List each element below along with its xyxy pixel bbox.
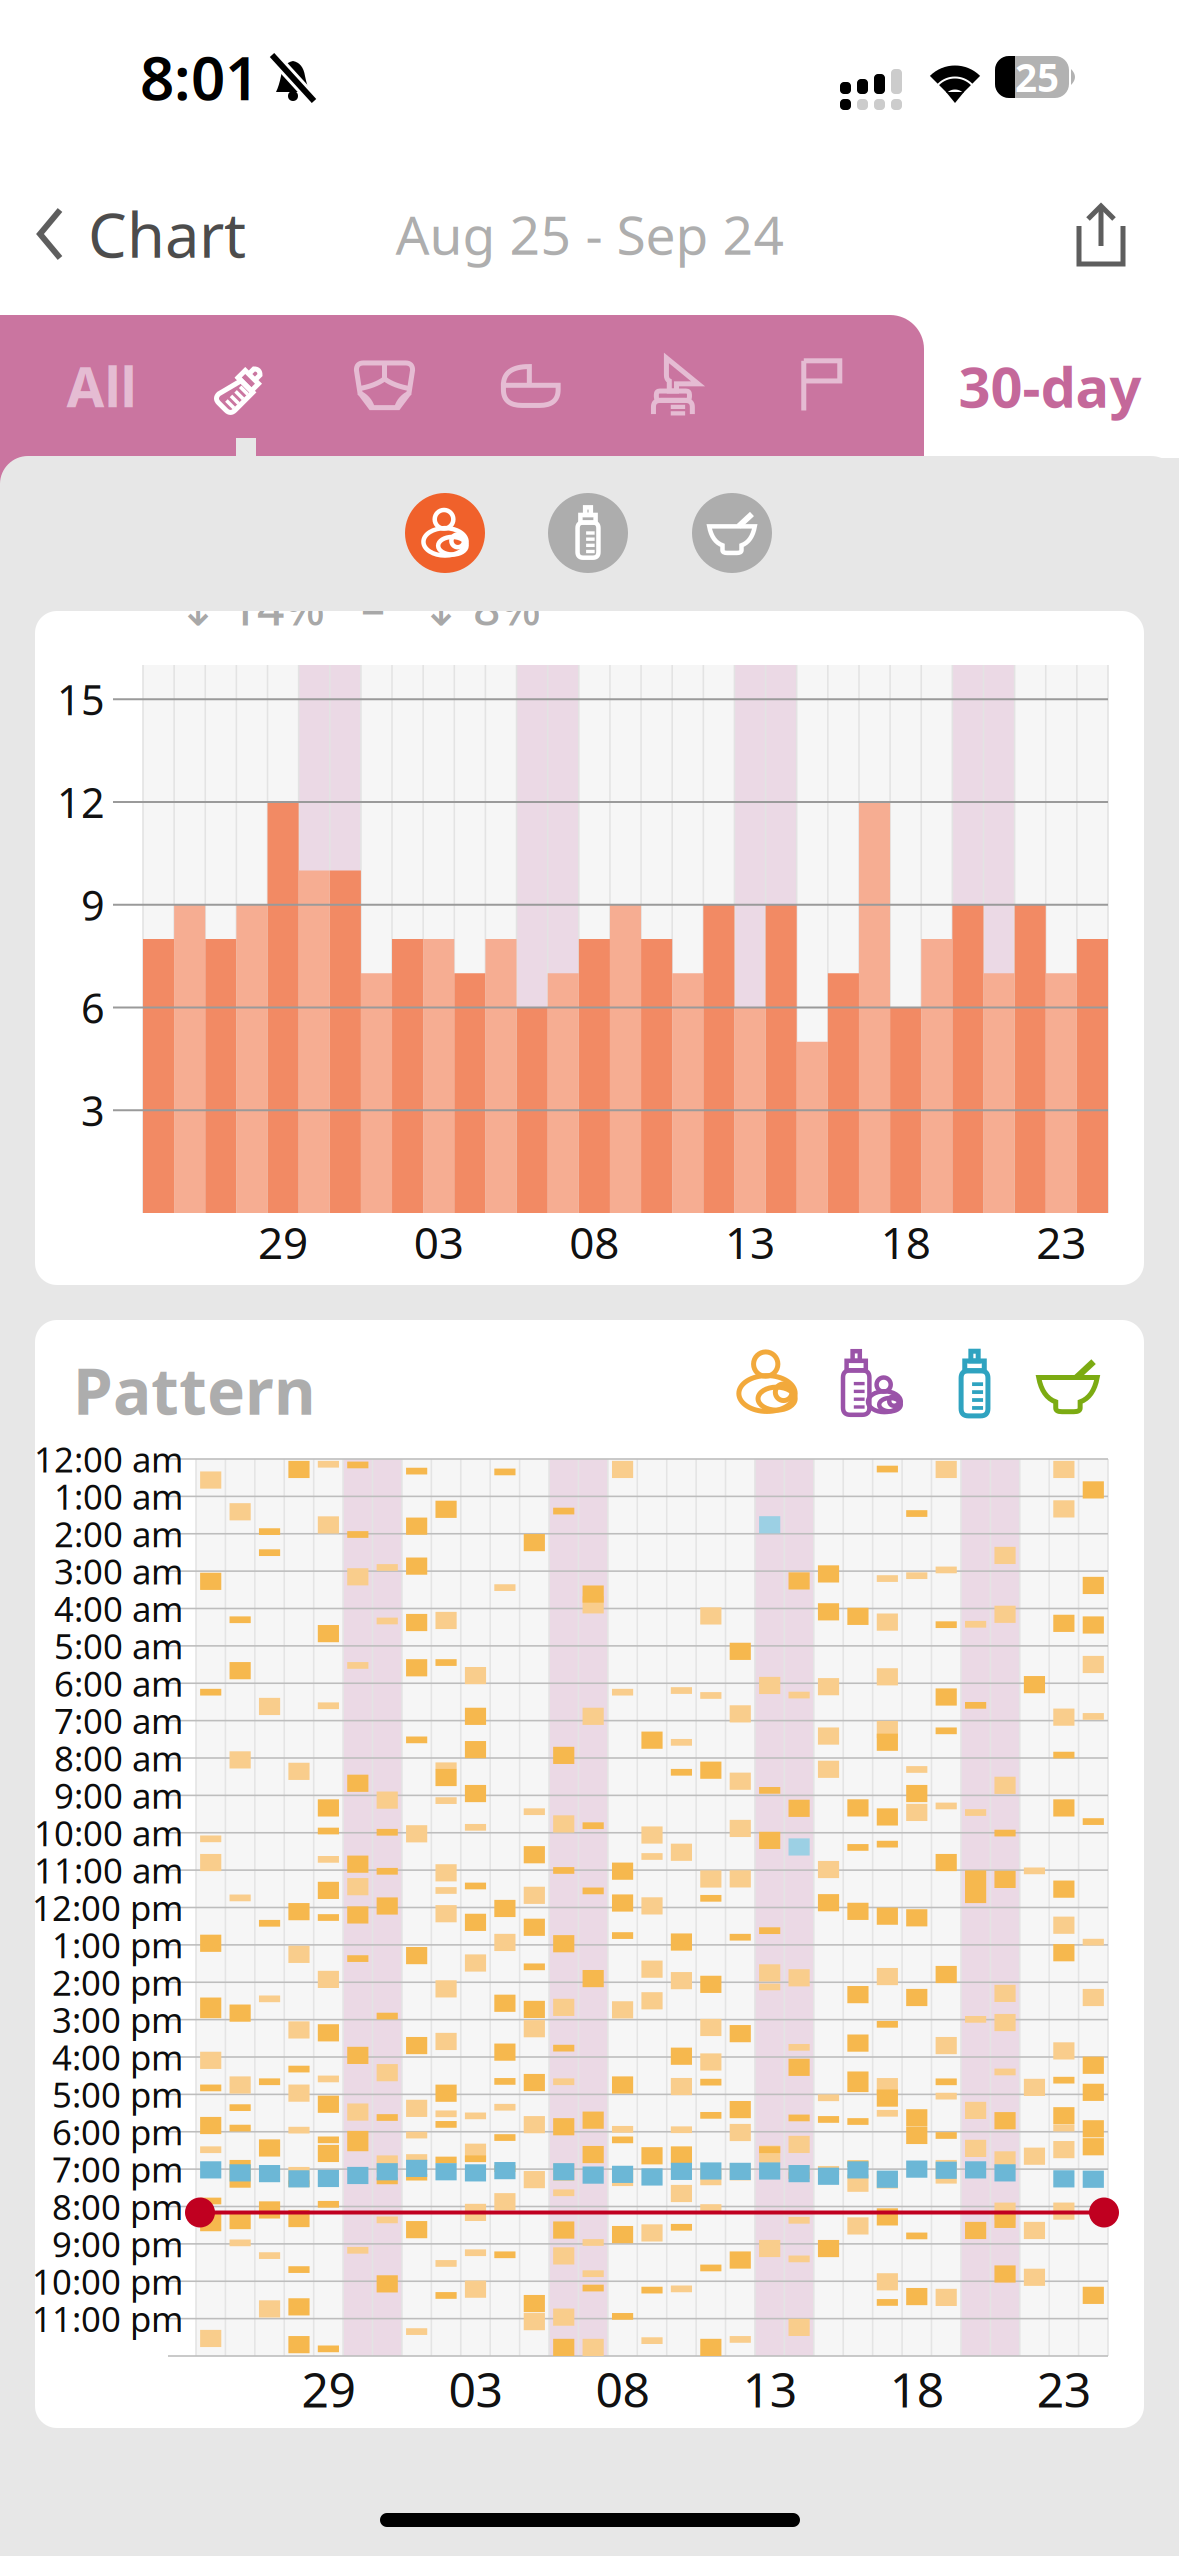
staticText: 29 [301, 2357, 355, 2421]
staticText: 6 [81, 980, 105, 1035]
staticText: Pattern [73, 1347, 316, 1432]
button[interactable]: 30-day [925, 315, 1175, 457]
staticText: 23 [1037, 2357, 1091, 2421]
staticText: 12:00 am [34, 1436, 183, 1482]
staticText: All [66, 350, 136, 422]
button[interactable]: Bottle [548, 493, 628, 573]
staticText: 1:00 pm [52, 1922, 183, 1968]
staticText: 3:00 am [54, 1548, 183, 1594]
button[interactable]: Milestone [751, 315, 894, 457]
staticText: 03 [448, 2357, 502, 2421]
staticText: 7:00 am [54, 1698, 183, 1744]
staticText: 3 [81, 1083, 105, 1138]
button[interactable]: Pump [605, 315, 748, 457]
staticText: 23 [1036, 1213, 1086, 1271]
staticText: 9:00 pm [52, 2221, 183, 2267]
staticText: 12 [57, 775, 105, 829]
staticText: 6:00 am [54, 1660, 183, 1706]
staticText: 11:00 pm [32, 2296, 183, 2342]
staticText: 30-day [958, 349, 1141, 423]
button[interactable]: Chart [0, 196, 246, 272]
staticText: 6:00 pm [52, 2109, 183, 2155]
button[interactable]: Aug 25 - Sep 24 [360, 196, 820, 272]
staticText: 18 [890, 2357, 944, 2421]
staticText: 25 [1015, 51, 1059, 103]
staticText: 15 [57, 672, 105, 727]
staticText: 7:00 pm [52, 2146, 183, 2192]
staticText: 4:00 am [54, 1585, 183, 1631]
staticText: 1:00 am [54, 1473, 183, 1519]
staticText: 9 [81, 877, 105, 932]
staticText: 13 [743, 2357, 797, 2421]
staticText: 12:00 pm [32, 1884, 183, 1930]
staticText: 8:01 [140, 37, 259, 117]
staticText: 8:00 pm [52, 2183, 183, 2229]
staticText: 13 [725, 1213, 775, 1271]
button[interactable]: Sleep [460, 315, 603, 457]
staticText: 10:00 pm [32, 2258, 183, 2304]
staticText: 11:00 am [34, 1847, 183, 1893]
staticText: ↓ 14% – ↓ 8% [178, 575, 541, 639]
staticText: 5:00 am [54, 1623, 183, 1669]
staticText: 03 [414, 1213, 464, 1271]
staticText: 2:00 pm [52, 1959, 183, 2005]
staticText: 10:00 am [34, 1810, 183, 1856]
staticText: 4:00 pm [52, 2034, 183, 2080]
staticText: 2:00 am [54, 1511, 183, 1557]
staticText: 8:00 am [54, 1735, 183, 1781]
button[interactable]: Feeding [170, 315, 313, 457]
staticText: 3:00 pm [52, 1997, 183, 2043]
button[interactable]: Nursing [405, 493, 485, 573]
staticText: 08 [596, 2357, 650, 2421]
button[interactable]: Solids [692, 493, 772, 573]
staticText: 9:00 am [54, 1772, 183, 1818]
staticText: 29 [258, 1213, 308, 1271]
staticText: 08 [569, 1213, 619, 1271]
staticText: 5:00 pm [52, 2071, 183, 2117]
button[interactable]: All [30, 315, 173, 457]
staticText: 18 [881, 1213, 931, 1271]
button[interactable]: Share [1074, 202, 1128, 268]
staticText: Aug 25 - Sep 24 [395, 199, 784, 269]
staticText: Chart [88, 193, 246, 275]
button[interactable]: Diaper [313, 315, 456, 457]
